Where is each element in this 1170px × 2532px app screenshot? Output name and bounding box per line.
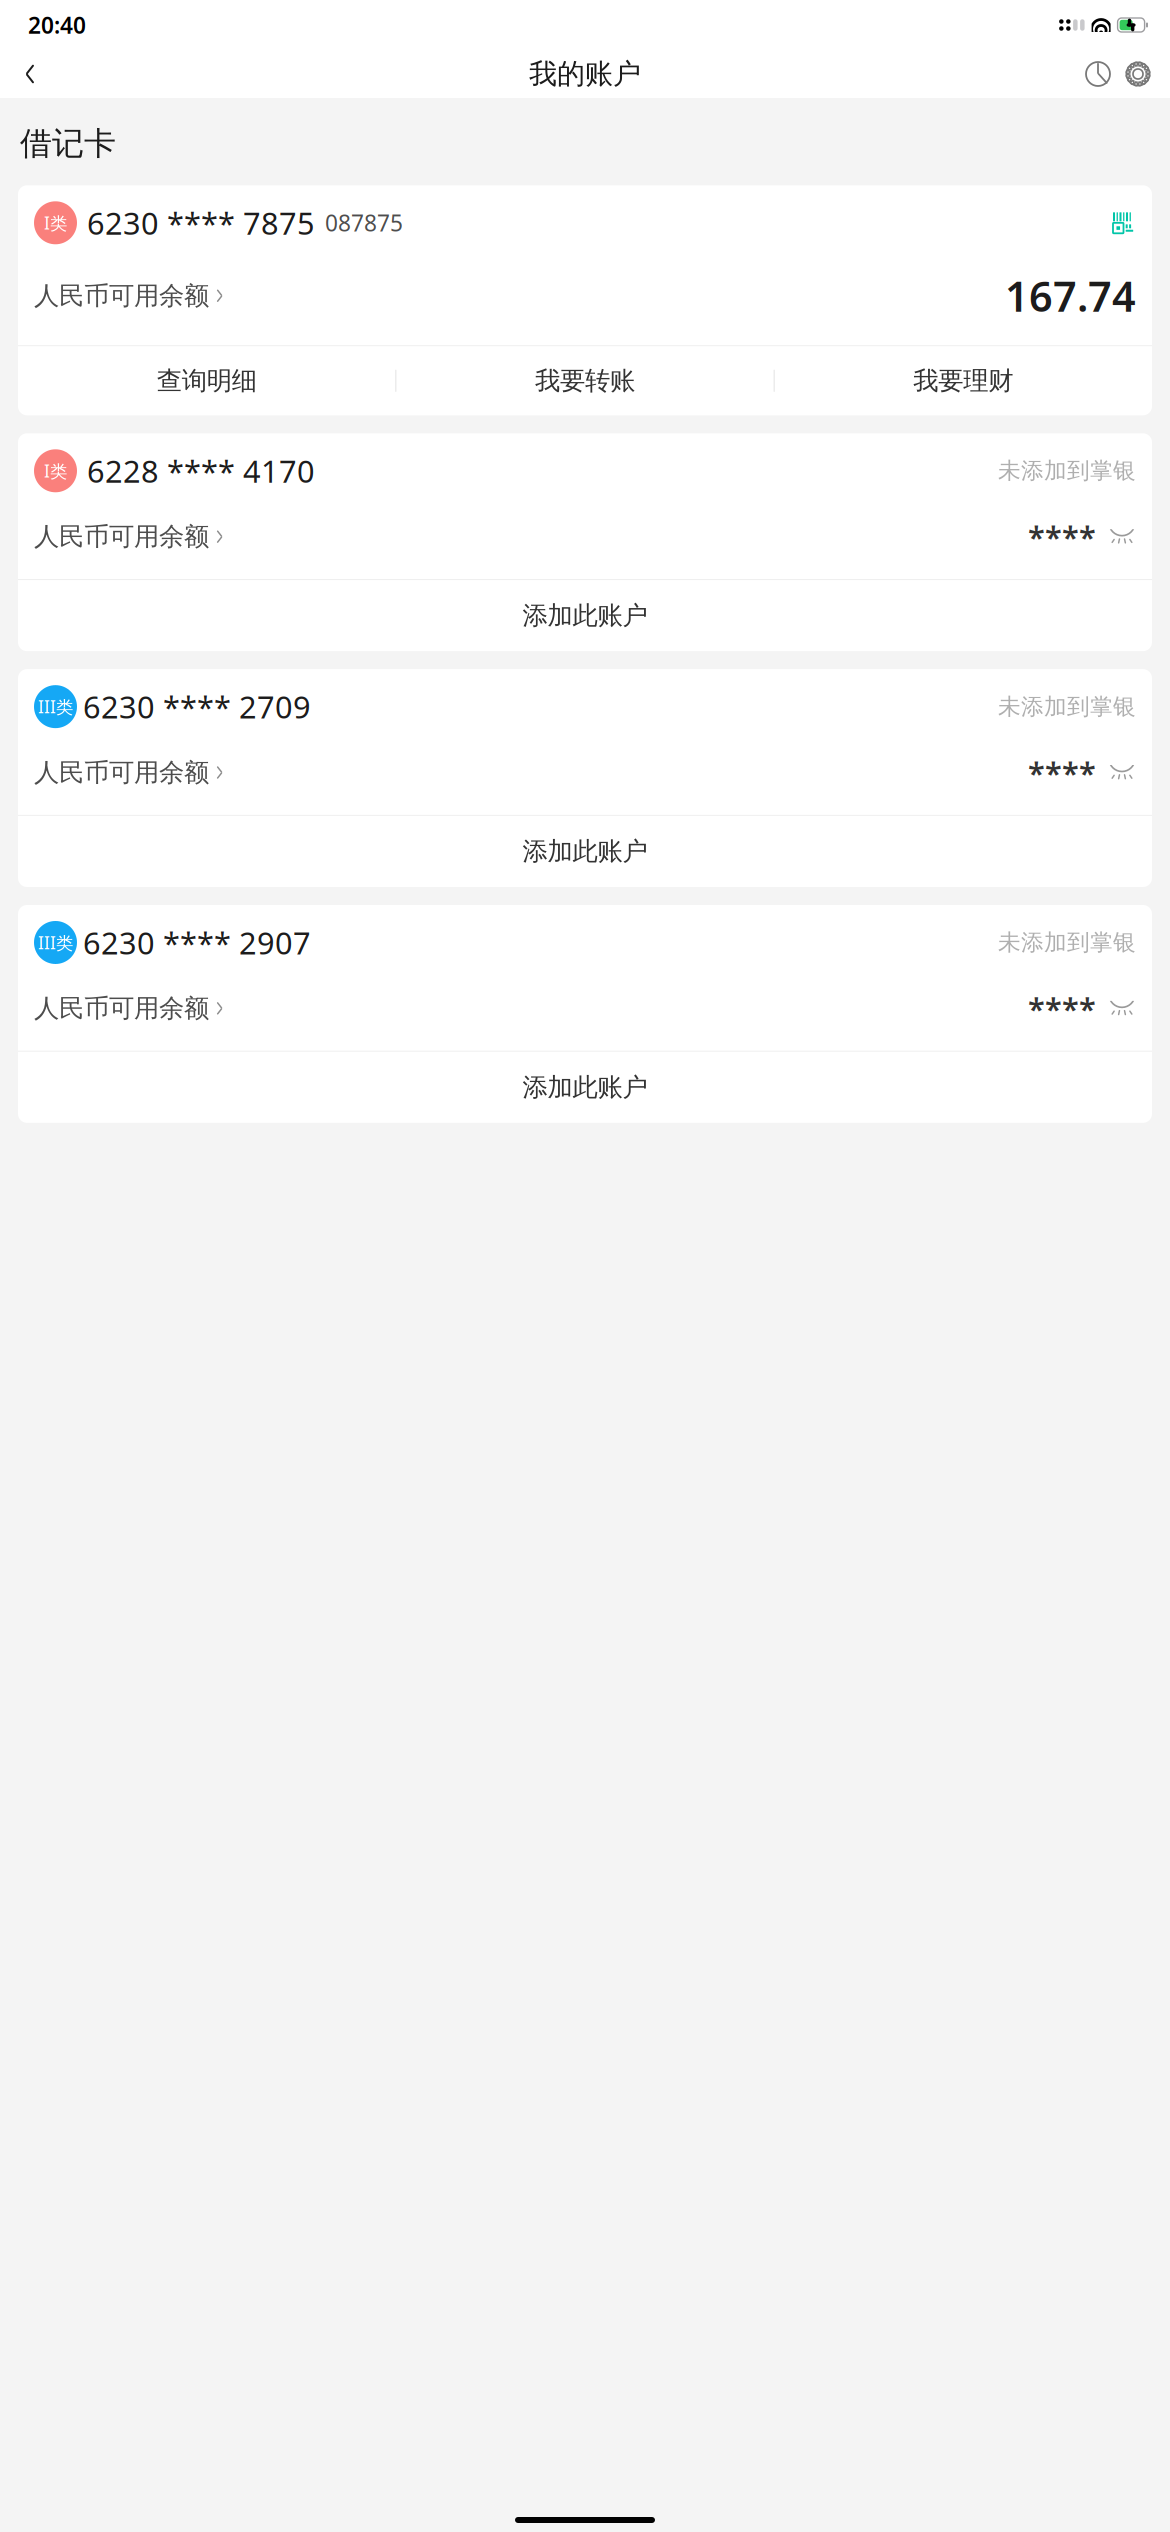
staticText: 人民币可用余额 [34,280,209,311]
staticText: 查询明细 [157,365,257,396]
staticText: **** [1028,516,1096,557]
staticText: 167.74 [1005,268,1136,323]
button[interactable]: 显示余额 [1108,765,1136,780]
staticText: 未添加到掌银 [998,457,1136,485]
staticText: 我的账户 [529,57,641,91]
button[interactable]: 显示余额 [1108,1001,1136,1016]
staticText: 添加此账户 [522,600,647,631]
staticText: I类 [44,211,67,234]
button[interactable]: 查询明细 [18,346,395,415]
staticText: **** [1028,752,1096,793]
button[interactable]: 人民币可用余额 [34,521,223,552]
button[interactable]: 我要转账 [396,346,774,415]
staticText: 6230 **** 2907 [83,922,311,963]
staticText: 人民币可用余额 [34,993,209,1024]
button[interactable]: 人民币可用余额 [34,280,223,311]
staticText: 人民币可用余额 [34,757,209,788]
staticText: 未添加到掌银 [998,929,1136,956]
staticText: 我要转账 [535,365,635,396]
button[interactable]: 人民币可用余额 [34,993,223,1024]
staticText: 6228 **** 4170 [87,450,315,491]
staticText: I类 [44,459,67,482]
button[interactable]: 人民币可用余额 [34,757,223,788]
staticText: III类 [38,931,73,954]
button[interactable]: 显示余额 [1108,529,1136,544]
button[interactable]: 添加此账户 [18,580,1152,651]
button[interactable]: 资产分析 [1078,52,1118,96]
button[interactable]: 返回 [8,52,52,96]
button[interactable]: 付款码 [1113,211,1136,234]
staticText: 未添加到掌银 [998,693,1136,720]
button[interactable]: 添加此账户 [18,816,1152,887]
button[interactable]: 我要理财 [775,346,1152,415]
button[interactable]: 设置 [1118,52,1158,96]
staticText: 添加此账户 [522,1072,647,1103]
staticText: 6230 **** 7875 [87,202,315,243]
staticText: 我要理财 [913,365,1013,396]
staticText: 添加此账户 [522,836,647,867]
staticText: 087875 [325,208,403,238]
button[interactable]: 添加此账户 [18,1052,1152,1123]
staticText: 借记卡 [20,124,116,163]
staticText: 人民币可用余额 [34,521,209,552]
staticText: 6230 **** 2709 [83,686,311,727]
staticText: III类 [38,695,73,718]
staticText: 20:40 [28,10,86,40]
staticText: **** [1028,988,1096,1029]
